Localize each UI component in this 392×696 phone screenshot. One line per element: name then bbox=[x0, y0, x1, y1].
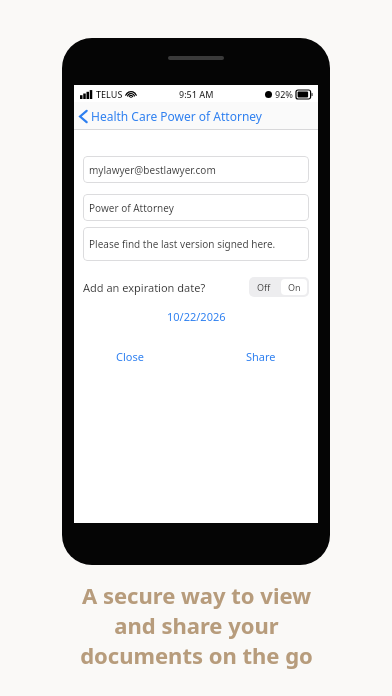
staticText: Close bbox=[116, 349, 144, 364]
button[interactable]: 10/22/2026 bbox=[74, 309, 318, 324]
staticText: Off bbox=[257, 281, 271, 293]
button[interactable]: Share bbox=[238, 345, 284, 368]
button[interactable]: Power of Attorney bbox=[83, 194, 309, 221]
button[interactable]: Off bbox=[249, 277, 279, 297]
staticText: documents on the go bbox=[80, 640, 313, 670]
button[interactable]: Health Care Power of Attorney bbox=[74, 105, 268, 127]
staticText: On bbox=[288, 281, 301, 293]
staticText: Power of Attorney bbox=[89, 201, 174, 215]
staticText: Add an expiration date? bbox=[83, 280, 206, 295]
staticText: TELUS bbox=[96, 88, 123, 100]
staticText: and share your bbox=[114, 610, 279, 640]
staticText: 10/22/2026 bbox=[167, 309, 226, 324]
button[interactable]: Close bbox=[108, 345, 152, 368]
staticText: 9:51 AM bbox=[179, 88, 214, 100]
staticText: 92% bbox=[275, 88, 293, 100]
staticText: mylawyer@bestlawyer.com bbox=[89, 163, 216, 177]
button[interactable]: mylawyer@bestlawyer.com bbox=[83, 156, 309, 183]
staticText: Health Care Power of Attorney bbox=[91, 108, 262, 124]
staticText: Please find the last version signed here… bbox=[89, 237, 276, 251]
button[interactable]: On bbox=[281, 279, 307, 295]
staticText: Share bbox=[246, 349, 276, 364]
button[interactable]: Please find the last version signed here… bbox=[83, 227, 309, 261]
staticText: A secure way to view bbox=[82, 580, 311, 610]
